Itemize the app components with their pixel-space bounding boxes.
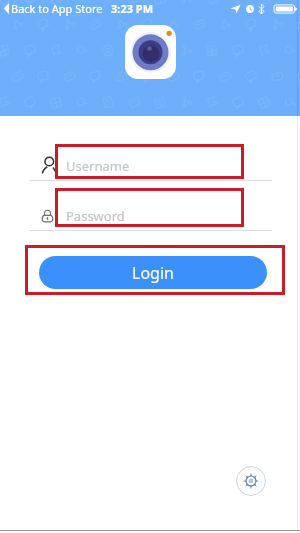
button[interactable]: Login xyxy=(39,256,267,289)
button[interactable] xyxy=(55,188,244,227)
staticText: Username xyxy=(66,157,130,175)
staticText: 3:23 PM xyxy=(111,1,154,16)
staticText: Login xyxy=(132,262,174,284)
staticText: Password xyxy=(66,207,125,225)
staticText: Back to App Store xyxy=(11,1,103,16)
button[interactable]: Settings xyxy=(236,466,266,496)
button[interactable] xyxy=(55,144,244,179)
